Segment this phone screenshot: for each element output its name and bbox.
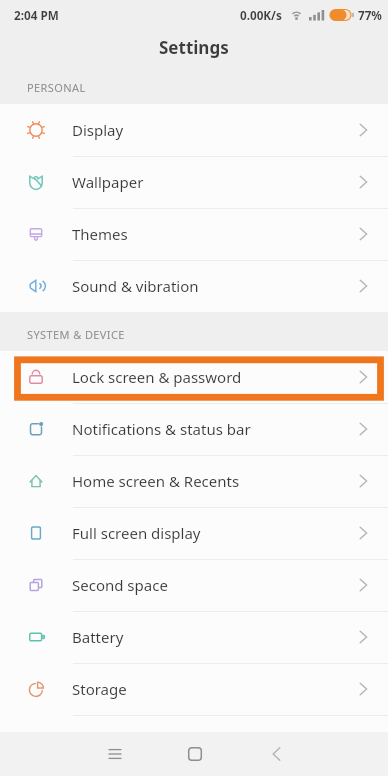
button[interactable]: [87, 732, 143, 776]
button[interactable]: Full screen display: [0, 507, 388, 559]
staticText: Battery: [72, 627, 124, 647]
button[interactable]: Display: [0, 104, 388, 156]
staticText: Themes: [72, 224, 128, 244]
staticText: Full screen display: [72, 523, 201, 543]
button[interactable]: Storage: [0, 663, 388, 715]
staticText: Storage: [72, 679, 127, 699]
button[interactable]: Wallpaper: [0, 156, 388, 208]
button[interactable]: Notifications & status bar: [0, 403, 388, 455]
button[interactable]: [167, 732, 223, 776]
staticText: Lock screen & password: [72, 367, 242, 387]
staticText: Second space: [72, 575, 168, 595]
staticText: Wallpaper: [72, 172, 144, 192]
staticText: Settings: [159, 36, 229, 59]
staticText: 2:04 PM: [14, 7, 59, 23]
button[interactable]: Themes: [0, 208, 388, 260]
button[interactable]: Home screen & Recents: [0, 455, 388, 507]
button[interactable]: Second space: [0, 559, 388, 611]
staticText: 0.00K/s: [240, 7, 282, 23]
staticText: PERSONAL: [27, 80, 86, 95]
staticText: Notifications & status bar: [72, 419, 251, 439]
button[interactable]: Lock screen & password: [0, 351, 388, 403]
staticText: 77%: [358, 7, 382, 23]
button[interactable]: Battery: [0, 611, 388, 663]
staticText: Display: [72, 120, 124, 140]
button[interactable]: Sound & vibration: [0, 260, 388, 312]
button[interactable]: [248, 732, 304, 776]
staticText: Sound & vibration: [72, 276, 199, 296]
staticText: SYSTEM & DEVICE: [27, 327, 125, 342]
staticText: Home screen & Recents: [72, 471, 240, 491]
